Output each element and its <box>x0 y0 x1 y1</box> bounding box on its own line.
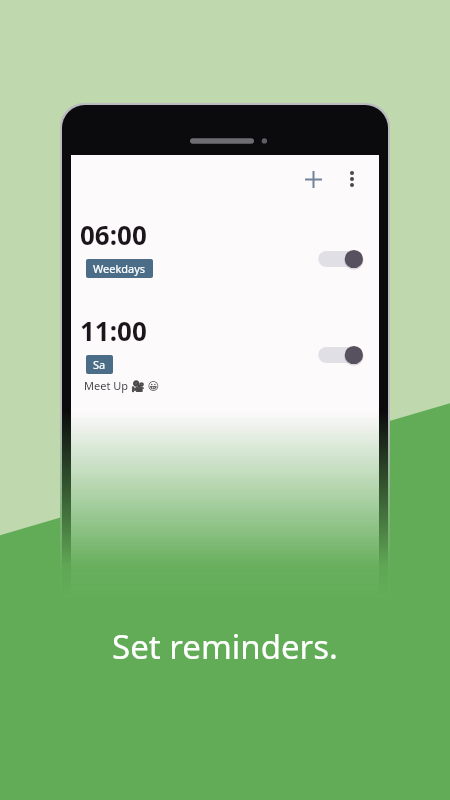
button[interactable]: Add alarm <box>294 160 332 198</box>
button[interactable]: Toggle alarm 11:00 <box>315 339 369 371</box>
staticText: 11:00 <box>80 313 147 348</box>
button[interactable]: 11:00 <box>71 313 379 393</box>
staticText: Set reminders. <box>112 624 338 669</box>
staticText: Meet Up 🎥 😀 <box>84 378 159 393</box>
button[interactable]: Toggle alarm 06:00 <box>315 243 369 275</box>
button[interactable]: 06:00 <box>71 217 379 278</box>
button[interactable]: Weekdays <box>86 259 153 278</box>
staticText: Weekdays <box>93 261 146 276</box>
staticText: 06:00 <box>80 217 147 252</box>
button[interactable]: Sa <box>86 355 113 374</box>
button[interactable]: More options <box>333 160 371 198</box>
staticText: Sa <box>93 357 106 372</box>
